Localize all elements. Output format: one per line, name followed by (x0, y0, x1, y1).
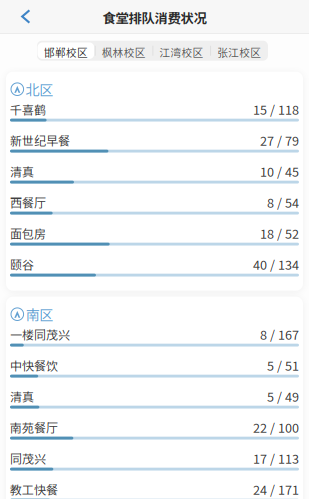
staticText: 西餐厅 (10, 193, 46, 211)
staticText: 千喜鹤 (10, 100, 46, 118)
button[interactable]: 清真 (10, 386, 299, 417)
staticText: 10 / 45 (260, 162, 299, 180)
staticText: 新世纪早餐 (10, 131, 70, 149)
staticText: 食堂排队消费状况 (102, 8, 206, 27)
button[interactable]: 千喜鹤 (10, 99, 299, 130)
staticText: 南区 (26, 304, 54, 324)
button[interactable]: 张江校区 (210, 41, 268, 61)
button[interactable]: 西餐厅 (10, 192, 299, 223)
staticText: 张江校区 (217, 44, 261, 60)
staticText: 一楼同茂兴 (10, 325, 70, 343)
staticText: 江湾校区 (159, 44, 203, 60)
button[interactable]: 颐谷 (10, 254, 299, 285)
button[interactable]: 面包房 (10, 223, 299, 254)
staticText: 40 / 134 (253, 255, 299, 273)
staticText: 教工快餐 (10, 480, 58, 498)
button[interactable]: 邯郸校区 (37, 41, 95, 61)
staticText: 8 / 54 (267, 193, 299, 211)
staticText: 清真 (10, 162, 34, 180)
staticText: 颐谷 (10, 255, 34, 273)
button[interactable]: 新世纪早餐 (10, 130, 299, 161)
staticText: 南苑餐厅 (10, 418, 58, 436)
staticText: 面包房 (10, 224, 46, 242)
staticText: 18 / 52 (260, 224, 299, 242)
button[interactable]: 清真 (10, 161, 299, 192)
staticText: 同茂兴 (10, 449, 46, 467)
button[interactable]: 一楼同茂兴 (10, 324, 299, 355)
button[interactable]: 江湾校区 (152, 41, 210, 61)
staticText: 24 / 171 (253, 480, 299, 498)
button[interactable]: 教工快餐 (10, 479, 299, 499)
button[interactable]: 南苑餐厅 (10, 417, 299, 448)
staticText: 邯郸校区 (44, 44, 88, 60)
button[interactable]: Back (0, 0, 44, 33)
staticText: 17 / 113 (253, 449, 299, 467)
button[interactable]: 枫林校区 (95, 41, 153, 61)
staticText: 清真 (10, 387, 34, 405)
staticText: 8 / 167 (260, 325, 299, 343)
staticText: 中快餐饮 (10, 356, 58, 374)
button[interactable]: 中快餐饮 (10, 355, 299, 386)
staticText: 27 / 79 (260, 131, 299, 149)
staticText: 5 / 51 (267, 356, 299, 374)
staticText: 北区 (26, 79, 54, 99)
staticText: 22 / 100 (253, 418, 299, 436)
staticText: 5 / 49 (267, 387, 299, 405)
staticText: 枫林校区 (102, 44, 146, 60)
staticText: 15 / 118 (253, 100, 299, 118)
button[interactable]: 同茂兴 (10, 448, 299, 479)
